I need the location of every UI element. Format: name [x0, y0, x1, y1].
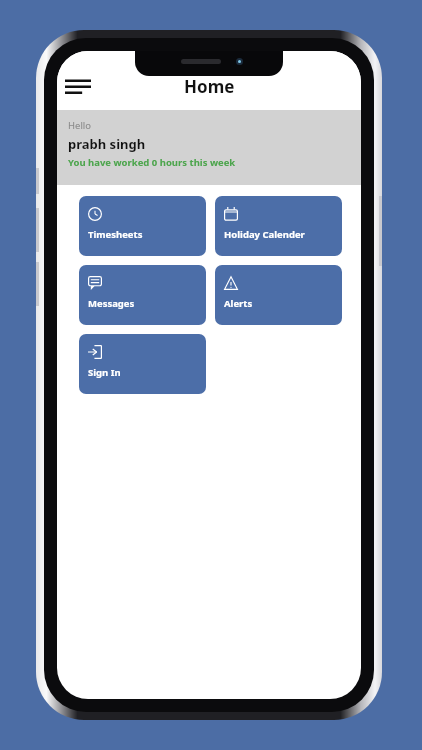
- button[interactable]: Timesheets: [79, 196, 206, 256]
- staticText: Sign In: [88, 366, 121, 379]
- button[interactable]: Alerts: [215, 265, 342, 325]
- staticText: Home: [184, 75, 235, 98]
- staticText: You have worked 0 hours this week: [68, 156, 236, 169]
- staticText: Messages: [88, 297, 135, 310]
- staticText: Hello: [68, 119, 92, 132]
- button[interactable]: Open navigation menu: [60, 70, 96, 106]
- staticText: prabh singh: [68, 135, 146, 153]
- staticText: Holiday Calender: [224, 228, 305, 241]
- button[interactable]: Holiday Calender: [215, 196, 342, 256]
- staticText: Alerts: [224, 297, 253, 310]
- button[interactable]: Messages: [79, 265, 206, 325]
- staticText: Timesheets: [88, 228, 143, 241]
- button[interactable]: Sign In: [79, 334, 206, 394]
